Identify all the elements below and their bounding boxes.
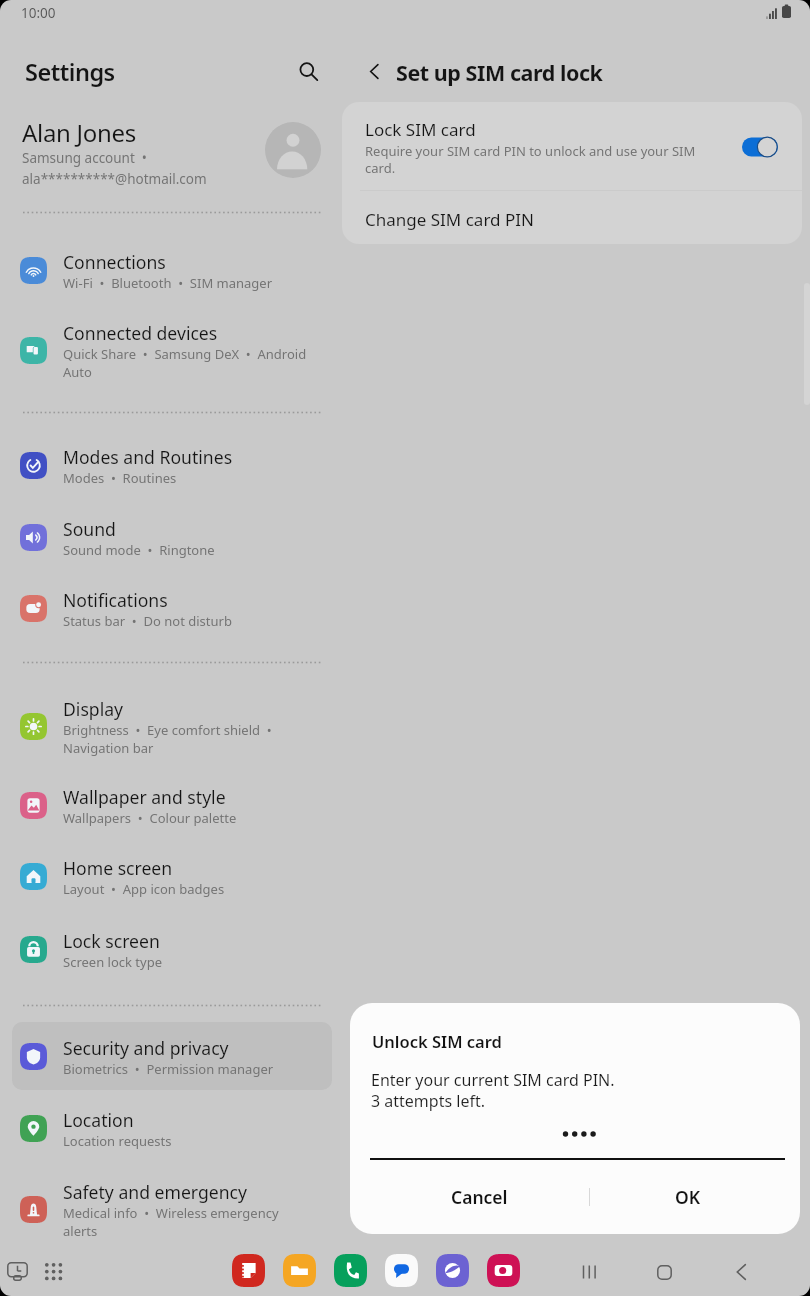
- button[interactable]: Connections: [12, 236, 332, 304]
- button[interactable]: Back: [356, 53, 392, 89]
- button[interactable]: Notifications: [12, 574, 332, 642]
- staticText: Settings: [25, 56, 115, 88]
- button[interactable]: Recent apps: [571, 1254, 607, 1290]
- staticText: Layout • App icon badges: [63, 880, 311, 898]
- staticText: Wallpaper and style: [63, 785, 226, 809]
- button[interactable]: Samsung Notes: [232, 1254, 265, 1287]
- button[interactable]: Display: [12, 683, 332, 769]
- staticText: Quick Share • Samsung DeX • Android Auto: [63, 345, 311, 381]
- staticText: Home screen: [63, 856, 173, 880]
- staticText: Status bar • Do not disturb: [63, 612, 311, 630]
- button[interactable]: Back: [723, 1254, 759, 1290]
- button[interactable]: My Files: [283, 1254, 316, 1287]
- staticText: Safety and emergency: [63, 1180, 247, 1204]
- button[interactable]: OK: [590, 1171, 785, 1223]
- button[interactable]: Phone: [334, 1254, 367, 1287]
- button[interactable]: Lock SIM card: [737, 130, 787, 164]
- staticText: Modes • Routines: [63, 469, 311, 487]
- staticText: Security and privacy: [63, 1036, 229, 1060]
- staticText: Location requests: [63, 1132, 311, 1150]
- staticText: Connections: [63, 250, 166, 274]
- staticText: Sound mode • Ringtone: [63, 541, 311, 559]
- staticText: Wi-Fi • Bluetooth • SIM manager: [63, 274, 311, 292]
- staticText: Alan Jones: [22, 116, 136, 149]
- button[interactable]: Messages: [385, 1254, 418, 1287]
- button[interactable]: Wallpaper and style: [12, 771, 332, 839]
- button[interactable]: Camera: [487, 1254, 520, 1287]
- staticText: Modes and Routines: [63, 445, 233, 469]
- button[interactable]: Alan Jones: [0, 108, 340, 192]
- button[interactable]: Location: [12, 1094, 332, 1162]
- staticText: OK: [675, 1185, 701, 1209]
- staticText: Medical info • Wireless emergency alerts: [63, 1204, 311, 1240]
- staticText: Require your SIM card PIN to unlock and …: [365, 142, 720, 177]
- button[interactable]: Lock screen: [12, 915, 332, 983]
- staticText: Connected devices: [63, 321, 218, 345]
- staticText: Notifications: [63, 588, 168, 612]
- button[interactable]: Security and privacy: [12, 1022, 332, 1090]
- staticText: Lock screen: [63, 929, 160, 953]
- button[interactable]: Home screen: [12, 842, 332, 910]
- staticText: Samsung account • ala**********@hotmail.…: [22, 149, 207, 188]
- button[interactable]: Sound: [12, 503, 332, 571]
- button[interactable]: Recents panel: [0, 1254, 35, 1289]
- staticText: Wallpapers • Colour palette: [63, 809, 311, 827]
- staticText: Set up SIM card lock: [396, 58, 603, 87]
- staticText: Brightness • Eye comfort shield • Naviga…: [63, 721, 311, 757]
- button[interactable]: Modes and Routines: [12, 431, 332, 499]
- button[interactable]: Safety and emergency: [12, 1166, 332, 1252]
- staticText: Enter your current SIM card PIN. 3 attem…: [371, 1069, 615, 1112]
- staticText: Location: [63, 1108, 134, 1132]
- staticText: Screen lock type: [63, 953, 311, 971]
- staticText: Change SIM card PIN: [365, 208, 534, 231]
- staticText: 10:00: [21, 4, 56, 22]
- button[interactable]: Lock SIM card: [342, 102, 802, 191]
- staticText: Display: [63, 697, 124, 721]
- staticText: Sound: [63, 517, 116, 541]
- staticText: Unlock SIM card: [372, 1030, 502, 1052]
- button[interactable]: Home: [646, 1254, 682, 1290]
- button[interactable]: Cancel: [370, 1171, 589, 1223]
- staticText: Biometrics • Permission manager: [63, 1060, 311, 1078]
- button[interactable]: Search: [291, 54, 325, 88]
- button[interactable]: Connected devices: [12, 307, 332, 393]
- staticText: Lock SIM card: [365, 118, 476, 141]
- button[interactable]: All apps: [36, 1254, 71, 1289]
- button[interactable]: Change SIM card PIN: [342, 192, 802, 244]
- button[interactable]: Internet: [436, 1254, 469, 1287]
- staticText: Cancel: [451, 1185, 508, 1209]
